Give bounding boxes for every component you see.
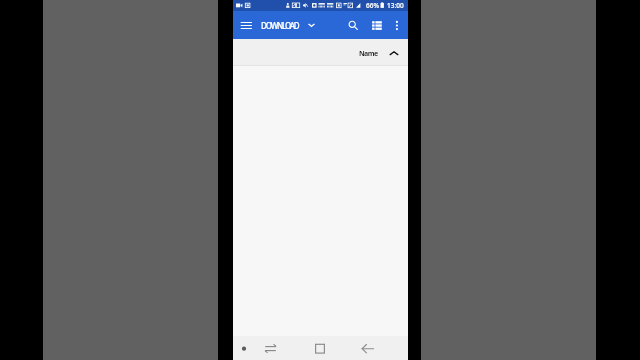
- staticText: Name: [359, 49, 378, 59]
- button[interactable]: Open navigation drawer: [235, 14, 257, 36]
- button[interactable]: Recent apps: [302, 336, 338, 360]
- staticText: 66%: [366, 1, 379, 10]
- staticText: DOWNLOAD: [261, 20, 299, 31]
- button[interactable]: Search: [341, 11, 365, 39]
- button[interactable]: DOWNLOAD: [261, 11, 315, 39]
- button[interactable]: Switch apps: [253, 336, 289, 360]
- button[interactable]: Back: [350, 336, 386, 360]
- button[interactable]: Assistant: [226, 336, 262, 360]
- staticText: 13:00: [387, 1, 404, 10]
- button[interactable]: Name: [359, 39, 398, 66]
- button[interactable]: More options: [385, 11, 409, 39]
- button[interactable]: Change view: [365, 11, 389, 39]
